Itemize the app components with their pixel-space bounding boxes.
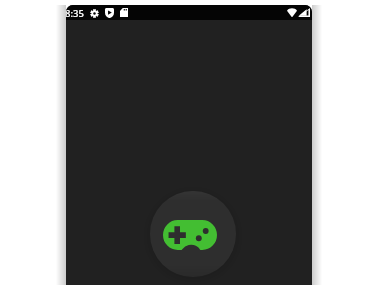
other: Wifi [287, 8, 297, 17]
other: Settings [90, 9, 99, 18]
button[interactable]: Game controller app icon [150, 191, 236, 277]
staticText: 8:35 [66, 7, 84, 20]
other: Mobile signal [298, 8, 310, 17]
other: Storage [120, 8, 128, 17]
other: Play Protect [105, 8, 114, 18]
